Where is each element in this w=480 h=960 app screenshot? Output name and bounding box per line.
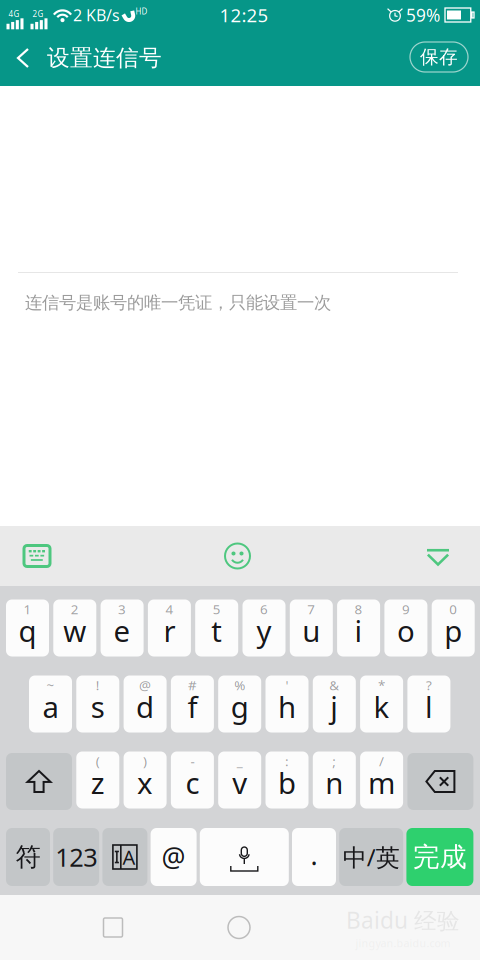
staticText: ~ <box>46 676 54 694</box>
button[interactable]: ) <box>124 753 167 810</box>
staticText: 8 <box>355 600 363 618</box>
staticText: k <box>374 687 390 726</box>
button[interactable]: / <box>360 753 403 810</box>
button[interactable]: Space <box>200 828 289 886</box>
button[interactable]: * <box>360 677 403 734</box>
button[interactable]: 保存 <box>410 42 468 74</box>
staticText: . <box>310 837 317 873</box>
staticText: y <box>256 611 271 650</box>
button[interactable]: Home <box>204 895 274 960</box>
staticText: v <box>232 763 247 802</box>
staticText: b <box>278 763 296 802</box>
staticText: n <box>325 763 343 802</box>
staticText: ' <box>285 676 288 694</box>
button[interactable]: & <box>313 677 356 734</box>
staticText: 4G <box>8 9 19 19</box>
button[interactable]: 2 <box>53 601 96 658</box>
staticText: 2G <box>32 9 43 19</box>
button[interactable]: 3 <box>101 601 144 658</box>
staticText: r <box>163 611 175 650</box>
button[interactable]: Shift <box>6 753 72 810</box>
button[interactable]: Back <box>0 30 46 86</box>
staticText: t <box>211 611 222 650</box>
staticText: 123 <box>55 840 97 874</box>
staticText: 完成 <box>413 841 467 873</box>
staticText: i <box>355 611 363 650</box>
button[interactable]: 完成 <box>406 828 473 886</box>
button[interactable]: Backspace <box>407 753 473 810</box>
staticText: z <box>91 763 105 802</box>
staticText: a <box>42 687 58 726</box>
staticText: 2 <box>71 600 79 618</box>
staticText: o <box>397 611 415 650</box>
staticText: * <box>378 676 385 694</box>
staticText: @ <box>139 676 151 694</box>
staticText: c <box>185 763 199 802</box>
button[interactable]: 1 <box>6 601 49 658</box>
staticText: 1 <box>23 600 31 618</box>
staticText: 6 <box>260 600 268 618</box>
staticText: q <box>18 611 36 650</box>
button[interactable]: 0 <box>432 601 475 658</box>
button[interactable]: 8 <box>337 601 380 658</box>
staticText: / <box>379 752 384 770</box>
button[interactable]: @ <box>151 828 197 886</box>
button[interactable]: 5 <box>195 601 238 658</box>
button[interactable]: @ <box>124 677 167 734</box>
button[interactable]: Recent apps <box>78 895 148 960</box>
button[interactable]: ; <box>313 753 356 810</box>
staticText: 12:25 <box>219 3 268 27</box>
button[interactable]: ~ <box>29 677 72 734</box>
staticText: e <box>114 611 131 650</box>
staticText: _ <box>237 752 243 770</box>
staticText: 连信号是账号的唯一凭证，只能设置一次 <box>25 292 331 313</box>
button[interactable]: : <box>265 753 308 810</box>
button[interactable]: Emoji <box>207 526 267 586</box>
staticText: m <box>368 763 395 802</box>
button[interactable]: Switch keyboard <box>7 526 67 586</box>
button[interactable]: - <box>171 753 214 810</box>
staticText: 保存 <box>420 45 458 68</box>
staticText: 4 <box>165 600 173 618</box>
staticText: # <box>188 676 197 694</box>
button[interactable]: 符 <box>6 828 50 886</box>
button[interactable]: 9 <box>384 601 427 658</box>
staticText: & <box>329 676 339 694</box>
button[interactable]: 4 <box>148 601 191 658</box>
button[interactable]: % <box>218 677 261 734</box>
button[interactable]: 7 <box>290 601 333 658</box>
staticText: A <box>122 844 135 870</box>
staticText: ) <box>143 752 147 770</box>
staticText: f <box>187 687 197 726</box>
staticText: d <box>136 687 154 726</box>
button[interactable]: Hide keyboard <box>408 526 468 586</box>
staticText: 3 <box>118 600 126 618</box>
button[interactable]: . <box>292 828 336 886</box>
staticText: g <box>231 687 249 726</box>
button[interactable]: 中/英 <box>339 828 403 886</box>
button[interactable]: _ <box>218 753 261 810</box>
button[interactable]: 6 <box>242 601 285 658</box>
staticText: : <box>285 752 289 770</box>
staticText: Baidu 经验 <box>346 905 460 935</box>
staticText: j <box>330 687 338 726</box>
staticText: w <box>63 611 86 650</box>
button[interactable]: ' <box>265 677 308 734</box>
button[interactable]: ? <box>407 677 450 734</box>
staticText: 2 KB/s <box>73 4 120 26</box>
staticText: ( <box>96 752 100 770</box>
staticText: 59% <box>406 3 440 26</box>
button[interactable]: ( <box>76 753 119 810</box>
button[interactable]: ! <box>76 677 119 734</box>
button[interactable]: 123 <box>53 828 99 886</box>
staticText: ; <box>332 752 336 770</box>
staticText: x <box>137 763 153 802</box>
button[interactable]: # <box>171 677 214 734</box>
button[interactable]: Input language <box>102 828 147 886</box>
staticText: HD <box>135 6 147 17</box>
staticText: % <box>234 676 245 694</box>
staticText: p <box>444 611 462 650</box>
staticText: 5 <box>213 600 221 618</box>
staticText: 中/英 <box>343 841 400 873</box>
staticText: ? <box>426 676 432 694</box>
